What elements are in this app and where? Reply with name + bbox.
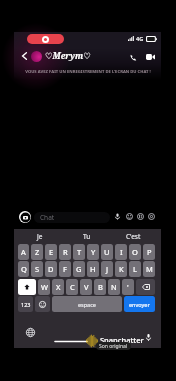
button[interactable]: G	[73, 261, 85, 277]
staticText: W	[41, 282, 48, 292]
staticText: Snapchatter	[100, 335, 144, 345]
button[interactable]: Camera	[19, 211, 31, 223]
button[interactable]: Emoji	[124, 211, 135, 222]
staticText: Tu	[83, 232, 91, 241]
button[interactable]: H	[87, 261, 99, 277]
button[interactable]: M	[143, 261, 155, 277]
button[interactable]: envoyer	[124, 296, 155, 312]
staticText: 4G	[136, 35, 144, 42]
button[interactable]: Video call	[144, 51, 156, 63]
staticText: F	[63, 264, 67, 274]
button[interactable]: P	[143, 244, 155, 260]
button[interactable]: Microphone	[144, 333, 153, 342]
button[interactable]: '	[122, 279, 134, 295]
button[interactable]: W	[38, 279, 50, 295]
button[interactable]: Screen recording	[27, 34, 64, 44]
button[interactable]: Profile picture	[31, 51, 42, 62]
button[interactable]: E	[45, 244, 57, 260]
staticText: E	[49, 247, 54, 257]
staticText: ♡Merym♡	[45, 50, 91, 62]
staticText: 123	[21, 301, 31, 308]
button[interactable]: Je	[17, 229, 63, 243]
button[interactable]: S	[31, 261, 43, 277]
button[interactable]: Shift	[18, 279, 36, 295]
button[interactable]: C	[66, 279, 78, 295]
button[interactable]: N	[108, 279, 120, 295]
staticText: J	[106, 264, 109, 274]
staticText: R	[63, 247, 68, 257]
button[interactable]: Call	[127, 51, 139, 63]
staticText: K	[119, 264, 124, 274]
button[interactable]: 123	[18, 296, 33, 312]
button[interactable]: Z	[31, 244, 43, 260]
button[interactable]: D	[45, 261, 57, 277]
button[interactable]: Q	[18, 261, 29, 277]
staticText: C'est	[126, 232, 141, 241]
button[interactable]: I	[115, 244, 127, 260]
button[interactable]: Backspace	[136, 279, 155, 295]
button[interactable]: ♡Merym♡	[45, 50, 91, 62]
staticText: B	[98, 282, 103, 292]
staticText: G	[76, 264, 82, 274]
button[interactable]: Back	[19, 50, 30, 61]
staticText: O	[132, 247, 138, 257]
button[interactable]: Stickers	[135, 211, 146, 222]
staticText: M	[146, 264, 153, 274]
button[interactable]: Y	[87, 244, 99, 260]
staticText: S	[35, 264, 40, 274]
staticText: U	[104, 247, 110, 257]
staticText: P	[147, 247, 152, 257]
staticText: X	[56, 282, 61, 292]
staticText: H	[90, 264, 96, 274]
staticText: VOUS AVEZ FAIT UN ENREGISTREMENT DE L'EC…	[25, 69, 151, 75]
staticText: envoyer	[129, 301, 150, 308]
button[interactable]: More options	[146, 211, 157, 222]
staticText: L	[133, 264, 137, 274]
button[interactable]: A	[18, 244, 29, 260]
button[interactable]: O	[129, 244, 141, 260]
button[interactable]: V	[80, 279, 92, 295]
button[interactable]: Emoji keyboard	[35, 296, 50, 312]
staticText: C	[70, 282, 75, 292]
staticText: '	[127, 282, 129, 292]
staticText: Son original	[99, 343, 128, 350]
button[interactable]: K	[115, 261, 127, 277]
staticText: T	[77, 247, 82, 257]
button[interactable]: X	[52, 279, 64, 295]
staticText: Chat	[40, 213, 55, 222]
staticText: D	[48, 264, 54, 274]
button[interactable]: F	[59, 261, 71, 277]
button[interactable]: L	[129, 261, 141, 277]
staticText: Z	[35, 247, 40, 257]
staticText: I	[120, 247, 123, 257]
staticText: V	[84, 282, 89, 292]
button[interactable]: C'est	[110, 229, 157, 243]
button[interactable]: U	[101, 244, 113, 260]
button[interactable]: Tu	[63, 229, 110, 243]
button[interactable]: espace	[52, 296, 122, 312]
button[interactable]: Voice message	[112, 211, 123, 222]
staticText: Y	[91, 247, 96, 257]
staticText: A	[21, 247, 26, 257]
staticText: N	[111, 282, 117, 292]
button[interactable]: T	[73, 244, 85, 260]
staticText: Q	[21, 264, 27, 274]
button[interactable]: Chat	[34, 212, 110, 223]
button[interactable]: B	[94, 279, 106, 295]
staticText: espace	[78, 301, 96, 308]
button[interactable]: Change language	[25, 327, 36, 338]
button[interactable]: R	[59, 244, 71, 260]
staticText: Je	[37, 232, 43, 241]
button[interactable]: J	[101, 261, 113, 277]
